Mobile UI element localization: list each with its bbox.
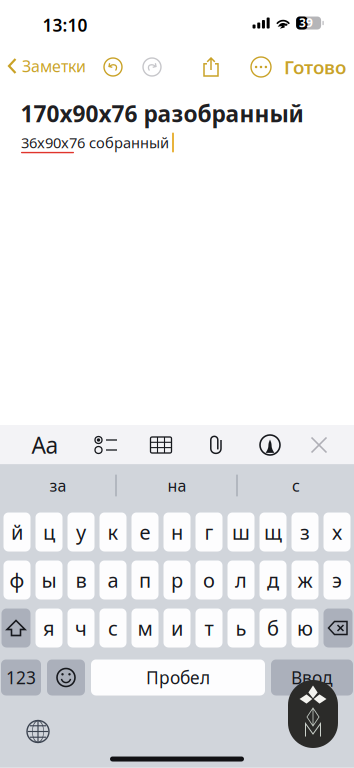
button[interactable]: с <box>99 608 126 647</box>
staticText: л <box>235 567 247 593</box>
button[interactable]: Заметки <box>1 49 93 83</box>
staticText: х <box>332 519 342 545</box>
button[interactable]: Table <box>137 425 185 465</box>
staticText: за <box>49 475 66 496</box>
staticText: 123 <box>6 666 36 689</box>
button[interactable]: Shift <box>1 608 30 647</box>
staticText: 39 <box>299 15 313 31</box>
staticText: з <box>300 519 310 545</box>
button[interactable]: Пробел <box>91 659 265 695</box>
button[interactable]: е <box>131 512 158 551</box>
staticText: Готово <box>284 55 346 79</box>
staticText: ш <box>232 519 250 545</box>
staticText: ж <box>297 567 312 593</box>
button[interactable]: ь <box>227 608 254 647</box>
staticText: ф <box>9 567 24 593</box>
button[interactable]: а <box>99 560 126 599</box>
button[interactable]: и <box>163 608 190 647</box>
button[interactable]: к <box>99 512 126 551</box>
button[interactable]: ц <box>35 512 62 551</box>
button[interactable]: г <box>195 512 222 551</box>
staticText: б <box>267 615 279 641</box>
button[interactable]: ы <box>35 560 62 599</box>
staticText: й <box>11 519 23 545</box>
staticText: ю <box>297 615 313 641</box>
button[interactable]: х <box>323 512 350 551</box>
button[interactable]: п <box>131 560 158 599</box>
button[interactable]: щ <box>259 512 286 551</box>
button[interactable]: Backspace <box>323 608 352 647</box>
button[interactable]: й <box>3 512 30 551</box>
staticText: в <box>75 567 86 593</box>
staticText: собранный <box>85 133 169 152</box>
button[interactable]: Switch keyboard <box>20 713 56 749</box>
button[interactable]: Ввод <box>271 659 353 695</box>
button[interactable]: з <box>291 512 318 551</box>
button[interactable]: о <box>195 560 222 599</box>
staticText: а <box>107 567 118 593</box>
button[interactable]: Attach file <box>192 425 240 465</box>
staticText: Ввод <box>291 666 333 689</box>
staticText: г <box>204 519 213 545</box>
button[interactable]: ю <box>291 608 318 647</box>
staticText: с <box>108 615 118 641</box>
staticText: м <box>137 615 152 641</box>
staticText: ч <box>75 615 87 641</box>
button[interactable]: Share <box>198 52 224 82</box>
button[interactable]: Undo <box>99 53 127 81</box>
button[interactable]: Checklist <box>82 425 130 465</box>
button[interactable]: Aa <box>21 425 69 465</box>
staticText: Пробел <box>146 666 210 689</box>
staticText: на <box>167 475 186 496</box>
button[interactable]: м <box>131 608 158 647</box>
staticText: у <box>76 519 86 545</box>
button[interactable]: ч <box>67 608 94 647</box>
staticText: н <box>171 519 183 545</box>
staticText: к <box>107 519 118 545</box>
staticText: о <box>203 567 215 593</box>
button[interactable]: с <box>240 466 352 504</box>
staticText: ы <box>41 567 56 593</box>
button[interactable]: л <box>227 560 254 599</box>
staticText: 36x90x76 <box>21 133 85 152</box>
staticText: щ <box>264 519 282 545</box>
button[interactable]: ж <box>291 560 318 599</box>
button[interactable]: Close <box>295 425 343 465</box>
button[interactable]: р <box>163 560 190 599</box>
button[interactable]: у <box>67 512 94 551</box>
staticText: с <box>292 475 300 496</box>
staticText: д <box>267 567 279 593</box>
button[interactable]: на <box>121 466 233 504</box>
staticText: Заметки <box>22 55 86 77</box>
staticText: я <box>43 615 55 641</box>
staticText: р <box>171 567 183 593</box>
button[interactable]: в <box>67 560 94 599</box>
staticText: Aa <box>31 430 58 460</box>
button[interactable]: Markup <box>246 425 294 465</box>
staticText: п <box>139 567 151 593</box>
staticText: ь <box>235 615 246 641</box>
staticText: 170x90x76 разобранный <box>20 98 303 128</box>
staticText: т <box>204 615 213 641</box>
staticText: и <box>171 615 183 641</box>
button[interactable]: э <box>323 560 350 599</box>
button[interactable]: б <box>259 608 286 647</box>
button[interactable]: я <box>35 608 62 647</box>
button[interactable]: ш <box>227 512 254 551</box>
button[interactable]: More options <box>246 52 276 82</box>
staticText: э <box>332 567 342 593</box>
button[interactable]: н <box>163 512 190 551</box>
button[interactable]: ф <box>3 560 30 599</box>
button[interactable]: Emoji keyboard <box>47 659 85 695</box>
staticText: е <box>139 519 150 545</box>
button[interactable]: за <box>2 466 114 504</box>
button[interactable]: Redo <box>138 53 166 81</box>
button[interactable]: д <box>259 560 286 599</box>
staticText: 13:10 <box>42 13 87 36</box>
button[interactable]: Готово <box>277 49 353 85</box>
button[interactable]: т <box>195 608 222 647</box>
button[interactable]: 123 <box>1 659 41 695</box>
staticText: ц <box>43 519 55 545</box>
